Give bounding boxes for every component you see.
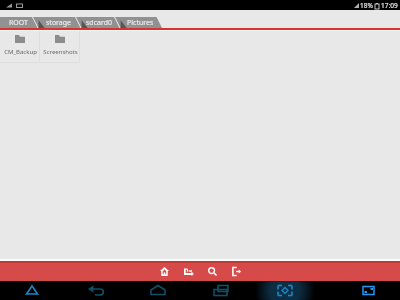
button[interactable]: sdcard0 [81,17,120,28]
staticText: 17:09 [381,1,398,10]
button[interactable]: Pictures [120,17,162,28]
button[interactable]: Recent apps [192,281,256,300]
staticText: CM_Backup [4,48,37,56]
staticText: Screenshots [43,48,78,56]
staticText: 18% [360,1,373,10]
staticText: storage [46,18,72,28]
button[interactable]: Multi window [336,281,400,300]
button[interactable]: storage [38,17,81,28]
staticText: Pictures [127,18,154,28]
staticText: sdcard0 [86,18,113,28]
button[interactable]: Screenshot [256,281,336,300]
button[interactable]: Menu [0,281,64,300]
button[interactable]: Home [128,281,192,300]
button[interactable]: New folder [178,261,198,281]
button[interactable]: Home [154,261,174,281]
button[interactable]: Search [202,261,222,281]
button[interactable]: Screenshots [40,31,80,63]
button[interactable]: CM_Backup [0,31,40,63]
button[interactable]: Exit [226,261,246,281]
button[interactable]: Back [64,281,128,300]
staticText: ROOT [9,18,28,28]
button[interactable]: ROOT [0,17,38,28]
